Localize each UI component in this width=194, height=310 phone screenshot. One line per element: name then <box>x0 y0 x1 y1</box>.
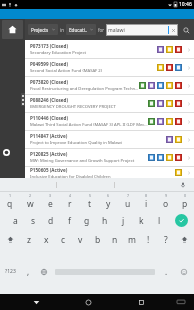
staticText: 4 <box>69 193 72 198</box>
button[interactable]: j <box>114 211 132 230</box>
button[interactable]: Voice input <box>172 178 194 191</box>
staticText: for <box>98 27 104 33</box>
staticText: b <box>95 234 101 246</box>
button[interactable]: Change language <box>36 249 52 294</box>
button[interactable]: g <box>78 211 96 230</box>
staticText: x <box>44 234 49 246</box>
button[interactable]: 3 <box>40 192 60 211</box>
button[interactable]: Clear <box>171 28 176 33</box>
staticText: Inclusive Education for Disabled Childre… <box>30 174 111 178</box>
button[interactable]: Recents <box>115 294 168 310</box>
button[interactable]: Enter <box>168 211 194 230</box>
button[interactable]: f <box>60 211 78 230</box>
staticText: P073173 (Closed) <box>30 43 69 49</box>
staticText: k <box>139 215 144 227</box>
button[interactable]: v <box>72 230 89 249</box>
button[interactable]: d <box>42 211 60 230</box>
staticText: 3 <box>49 193 52 198</box>
button[interactable]: ? <box>157 230 174 249</box>
button[interactable]: c <box>55 230 72 249</box>
staticText: l <box>158 215 161 227</box>
button[interactable]: Shift <box>174 230 194 249</box>
staticText: o <box>163 198 169 210</box>
staticText: 1 <box>9 193 12 198</box>
staticText: 9 <box>165 193 168 198</box>
button[interactable]: x <box>38 230 55 249</box>
staticText: P073820 (Closed) <box>30 79 69 85</box>
button[interactable]: P114847 (Active) <box>25 131 194 149</box>
button[interactable]: P110446 (Closed) <box>25 113 194 131</box>
staticText: Project to Improve Education Quality in … <box>30 140 122 146</box>
staticText: e <box>48 198 53 210</box>
staticText: P049599 (Closed) <box>30 61 69 67</box>
button[interactable]: P120825 (Active) <box>25 149 194 167</box>
button[interactable]: 1 <box>0 192 20 211</box>
staticText: c <box>61 234 66 246</box>
button[interactable]: 9 <box>156 192 175 211</box>
button[interactable]: Record <box>3 149 10 156</box>
staticText: 10:46 <box>179 1 192 8</box>
staticText: Malawi Third Social Action Fund (MASAF 3… <box>30 122 148 128</box>
staticText: Projects <box>31 27 49 33</box>
button[interactable]: m <box>123 230 140 249</box>
button[interactable]: P049599 (Closed) <box>25 59 194 77</box>
button[interactable]: 0 <box>175 192 194 211</box>
button[interactable]: h <box>96 211 114 230</box>
staticText: ! <box>147 234 150 246</box>
staticText: n <box>112 234 118 246</box>
button[interactable]: Emoji <box>174 249 194 294</box>
staticText: 6 <box>107 193 110 198</box>
button[interactable]: 7 <box>118 192 137 211</box>
button[interactable]: P150605 (Active) <box>25 167 194 178</box>
button[interactable]: P088246 (Closed) <box>25 95 194 113</box>
button[interactable]: z <box>20 230 38 249</box>
button[interactable]: Space <box>52 249 158 294</box>
button[interactable]: a <box>7 211 24 230</box>
button[interactable]: Back <box>10 294 62 310</box>
button[interactable]: Search <box>181 25 191 35</box>
staticText: . <box>165 266 168 277</box>
staticText: , <box>27 266 30 277</box>
staticText: Fiscal Restructuring and Deregulation Pr… <box>30 86 139 92</box>
button[interactable]: 8 <box>137 192 156 211</box>
button[interactable]: 6 <box>99 192 118 211</box>
staticText: r <box>68 198 72 210</box>
button[interactable]: Home <box>2 20 23 39</box>
button[interactable]: ?123 <box>0 249 20 294</box>
button[interactable]: Projects <box>28 24 58 35</box>
button[interactable]: Shift <box>0 230 20 249</box>
staticText: w <box>27 198 34 210</box>
button[interactable]: k <box>132 211 150 230</box>
button[interactable]: b <box>89 230 106 249</box>
staticText: z <box>27 234 31 246</box>
button[interactable]: P073173 (Closed) <box>25 41 194 59</box>
button[interactable]: ! <box>140 230 157 249</box>
button[interactable]: 4 <box>60 192 80 211</box>
button[interactable]: l <box>150 211 168 230</box>
staticText: d <box>48 215 54 227</box>
staticText: MW: Mining Governance and Growth Support… <box>30 158 135 164</box>
button[interactable]: s <box>24 211 42 230</box>
staticText: t <box>88 198 92 210</box>
staticText: 2 <box>29 193 32 198</box>
staticText: g <box>84 215 90 227</box>
button[interactable]: Keyboard <box>168 294 194 310</box>
button[interactable]: n <box>106 230 123 249</box>
staticText: y <box>106 198 111 210</box>
button[interactable]: Open panel <box>21 93 25 106</box>
button[interactable]: 5 <box>80 192 99 211</box>
button[interactable]: , <box>20 249 36 294</box>
button[interactable]: P073820 (Closed) <box>25 77 194 95</box>
button[interactable]: 2 <box>20 192 40 211</box>
staticText: q <box>7 198 13 210</box>
staticText: u <box>125 198 131 210</box>
staticText: P120825 (Active) <box>30 151 68 157</box>
button[interactable]: Home <box>62 294 115 310</box>
button[interactable]: . <box>158 249 174 294</box>
button[interactable]: malawi <box>106 24 178 36</box>
button[interactable]: Educati.. <box>66 24 96 35</box>
staticText: malawi <box>108 27 168 34</box>
